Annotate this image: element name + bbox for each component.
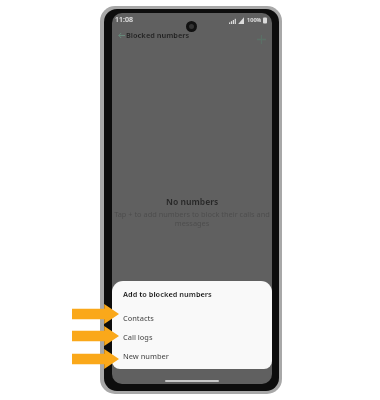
staticText: Call logs — [123, 332, 153, 342]
staticText: New number — [123, 351, 169, 361]
staticText: 100% — [247, 16, 262, 24]
button[interactable]: Add number — [254, 32, 268, 46]
staticText: No numbers — [166, 196, 219, 208]
button[interactable]: Back — [114, 28, 128, 42]
staticText: Blocked numbers — [126, 30, 190, 40]
staticText: Contacts — [123, 313, 154, 323]
button[interactable]: Call logs — [112, 327, 272, 346]
staticText: Add to blocked numbers — [123, 289, 212, 299]
staticText: 11:08 — [115, 15, 133, 25]
staticText: Tap + to add numbers to block their call… — [114, 209, 270, 229]
button[interactable]: New number — [112, 346, 272, 365]
button[interactable]: Contacts — [112, 308, 272, 327]
